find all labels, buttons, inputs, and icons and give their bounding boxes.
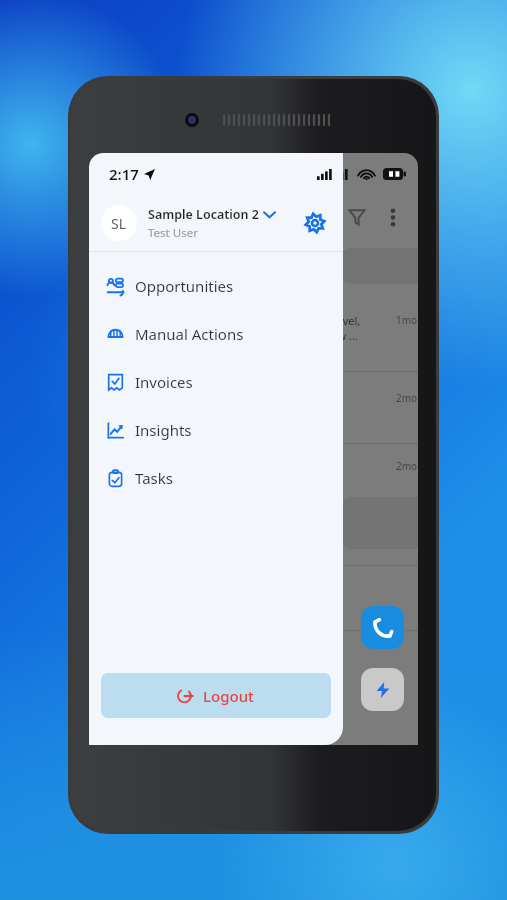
staticText: 2mo [396,391,418,405]
staticText: 2mo [396,459,418,473]
staticText: SL [111,214,127,233]
staticText: Logout [203,686,254,706]
button[interactable]: Filter [338,198,376,236]
staticText: Invoices [135,372,193,392]
staticText: ow … [331,328,358,343]
button[interactable]: Invoices [89,358,343,406]
button[interactable]: Opportunities [89,262,343,310]
button[interactable]: More options [376,200,410,234]
staticText: Sample Location 2 [148,206,259,223]
staticText: Test User [148,225,198,241]
button[interactable]: SL [101,195,335,251]
staticText: Opportunities [135,276,234,296]
staticText: Tasks [135,468,173,488]
button[interactable]: Settings [295,203,335,243]
staticText: 1mo [396,313,418,327]
staticText: Manual Actions [135,324,244,344]
button[interactable]: Quick action [361,668,404,711]
staticText: Insights [135,420,192,440]
button[interactable]: Insights [89,406,343,454]
button[interactable]: Manual Actions [89,310,343,358]
staticText: Level, [331,313,361,328]
button[interactable]: Logout [101,673,331,718]
button[interactable]: Tasks [89,454,343,502]
button[interactable]: Call [361,606,404,649]
staticText: 2:17 [109,164,139,184]
